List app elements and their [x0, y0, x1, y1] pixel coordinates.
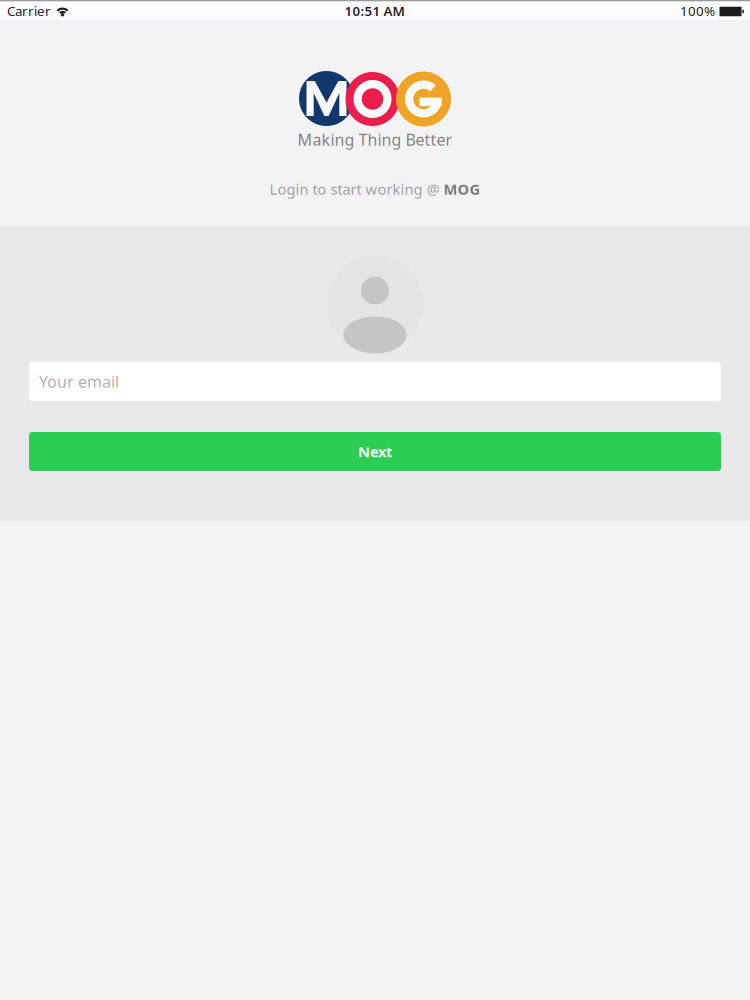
button[interactable]: Your email — [29, 362, 721, 401]
staticText: MOG — [443, 179, 480, 199]
staticText: 10:51 AM — [344, 2, 404, 20]
staticText: 100% — [680, 2, 715, 20]
staticText: Login to start working @ — [269, 179, 443, 199]
staticText: Your email — [39, 371, 119, 392]
staticText: Making Thing Better — [297, 129, 452, 150]
button[interactable]: Choose profile photo — [326, 256, 423, 353]
staticText: Carrier — [7, 2, 51, 20]
staticText: Next — [358, 442, 392, 461]
button[interactable]: Next — [29, 432, 721, 471]
